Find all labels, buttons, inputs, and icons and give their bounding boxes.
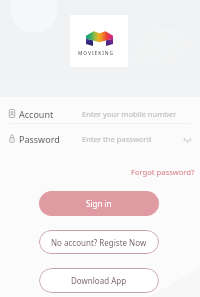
staticText: Account xyxy=(19,108,54,120)
button[interactable]: Account xyxy=(0,101,200,126)
button[interactable]: Download App xyxy=(39,268,159,293)
button[interactable]: No account? Registe Now xyxy=(39,230,159,254)
button[interactable]: Password xyxy=(0,126,200,151)
staticText: No account? Registe Now xyxy=(51,237,147,248)
staticText: MOVIEKING xyxy=(78,50,114,57)
button[interactable]: Forgot password? xyxy=(128,163,198,181)
staticText: Password xyxy=(19,133,60,145)
button[interactable]: Sign in xyxy=(39,191,159,216)
staticText: Sign in xyxy=(86,198,112,209)
staticText: Forgot password? xyxy=(131,167,195,177)
staticText: Download App xyxy=(71,275,127,286)
staticText: Enter your mobile number xyxy=(82,109,177,119)
staticText: Enter the password xyxy=(82,134,152,144)
other: Show password xyxy=(184,134,191,143)
